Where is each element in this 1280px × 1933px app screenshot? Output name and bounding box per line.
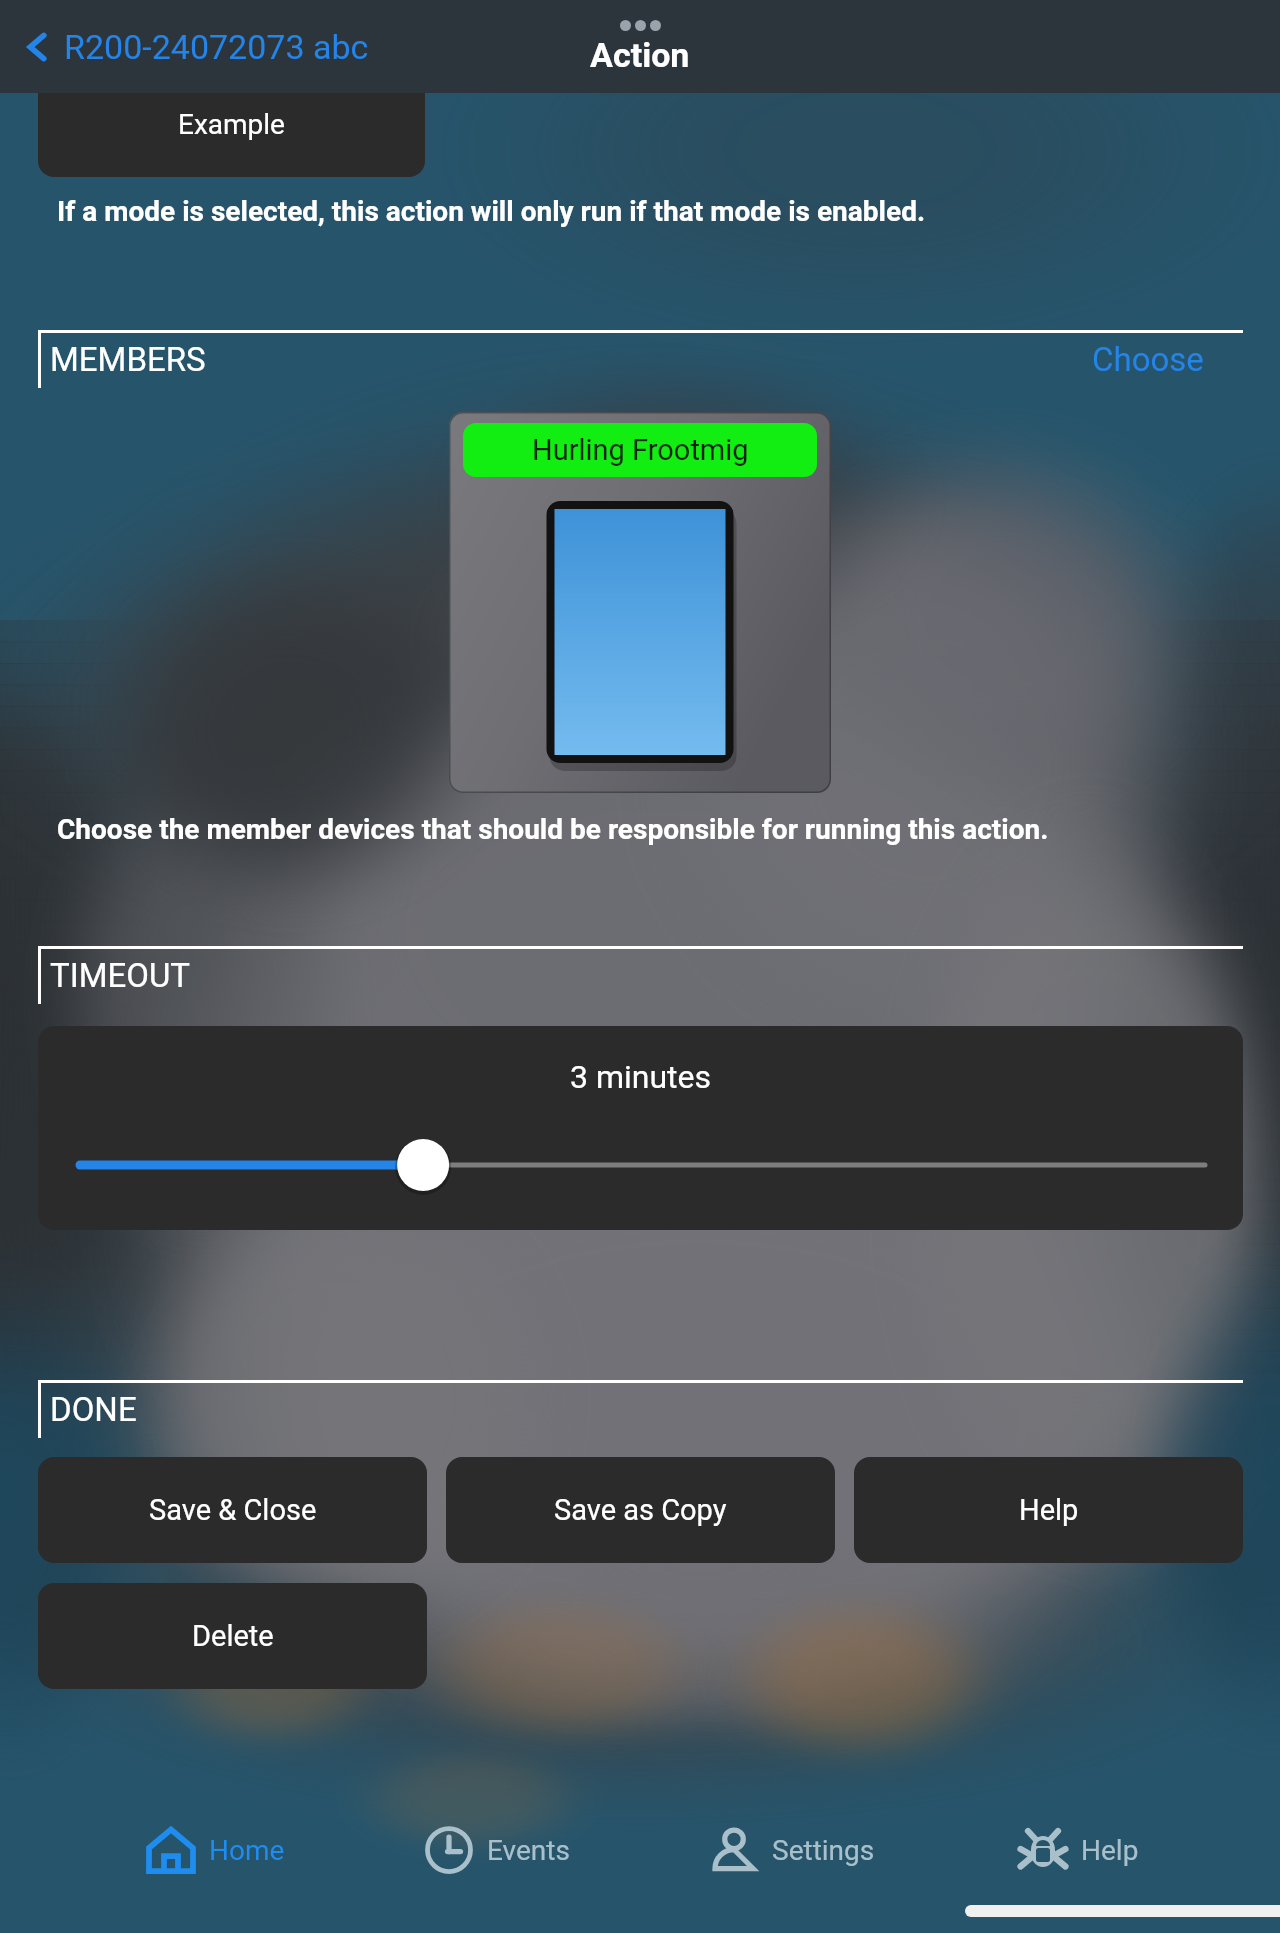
staticText: Hurling Frootmig bbox=[532, 433, 749, 467]
button[interactable]: Save as Copy bbox=[446, 1457, 835, 1563]
staticText: 3 minutes bbox=[570, 1058, 712, 1096]
button[interactable]: Home bbox=[146, 1814, 295, 1886]
staticText: Settings bbox=[772, 1834, 875, 1867]
staticText: Events bbox=[487, 1834, 570, 1867]
button[interactable]: Help bbox=[1018, 1814, 1149, 1886]
staticText: Help bbox=[1081, 1834, 1139, 1867]
button[interactable]: Back to R200-24072073 abc bbox=[0, 0, 381, 93]
staticText: If a mode is selected, this action will … bbox=[57, 195, 926, 228]
staticText: Action bbox=[590, 35, 690, 75]
button[interactable]: Help bbox=[854, 1457, 1243, 1563]
staticText: Example bbox=[178, 108, 285, 141]
button[interactable]: 3 minutes bbox=[38, 1026, 1243, 1230]
staticText: DONE bbox=[50, 1390, 137, 1429]
staticText: MEMBERS bbox=[50, 340, 206, 379]
staticText: R200-24072073 abc bbox=[64, 27, 369, 67]
button[interactable]: Events bbox=[424, 1814, 580, 1886]
staticText: TIMEOUT bbox=[50, 956, 191, 995]
button[interactable]: Choose bbox=[1080, 340, 1243, 379]
button[interactable]: Delete bbox=[38, 1583, 427, 1689]
staticText: Delete bbox=[192, 1619, 274, 1653]
staticText: Home bbox=[209, 1834, 285, 1867]
staticText: Choose the member devices that should be… bbox=[57, 813, 1049, 846]
button[interactable]: Example bbox=[38, 93, 425, 177]
staticText: Save as Copy bbox=[554, 1493, 727, 1527]
staticText: Save & Close bbox=[149, 1493, 317, 1527]
button[interactable]: Settings bbox=[709, 1814, 885, 1886]
staticText: Help bbox=[1019, 1493, 1079, 1527]
button[interactable]: Hurling Frootmig bbox=[449, 412, 831, 793]
button[interactable]: Save & Close bbox=[38, 1457, 427, 1563]
